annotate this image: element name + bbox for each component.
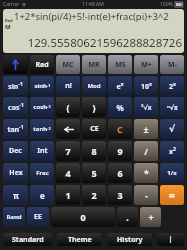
- staticText: √: [169, 124, 176, 134]
- staticText: 2x: [169, 81, 176, 91]
- button[interactable]: Rand: [3, 207, 25, 227]
- button[interactable]: M-: [160, 55, 184, 74]
- button[interactable]: C: [108, 119, 132, 139]
- button[interactable]: 0: [51, 207, 115, 227]
- staticText: .: [126, 211, 129, 223]
- staticText: ex: [116, 81, 124, 91]
- button[interactable]: tan-1: [3, 119, 28, 139]
- button[interactable]: sin-1: [3, 76, 28, 95]
- button[interactable]: n!: [56, 76, 80, 95]
- staticText: e: [40, 190, 45, 201]
- button[interactable]: Int: [30, 141, 54, 161]
- button[interactable]: 1/x: [160, 163, 184, 183]
- button[interactable]: Standard: [3, 233, 52, 246]
- button[interactable]: sinh-1: [30, 76, 54, 95]
- button[interactable]: 3: [108, 185, 132, 205]
- button[interactable]: 7: [56, 141, 80, 161]
- staticText: ⁿ√x: [167, 103, 178, 112]
- staticText: M-: [168, 60, 177, 70]
- button[interactable]: Equals: [160, 185, 184, 205]
- button[interactable]: 10x: [134, 76, 158, 95]
- staticText: cos-1: [8, 102, 24, 112]
- button[interactable]: EE: [27, 207, 49, 227]
- staticText: 7: [65, 145, 71, 157]
- button[interactable]: 6: [108, 163, 132, 183]
- staticText: sinh-1: [34, 82, 51, 90]
- button[interactable]: 2: [82, 185, 106, 205]
- button[interactable]: Square root: [160, 119, 184, 139]
- button[interactable]: 2x: [160, 76, 184, 95]
- staticText: 3: [117, 189, 123, 201]
- button[interactable]: M+: [134, 55, 158, 74]
- staticText: Frac: [36, 169, 49, 177]
- button[interactable]: /: [134, 141, 158, 161]
- staticText: =: [169, 188, 175, 202]
- button[interactable]: (: [56, 97, 80, 117]
- staticText: 5: [91, 167, 97, 179]
- staticText: 100%: [160, 1, 173, 8]
- button[interactable]: 9: [108, 141, 132, 161]
- staticText: M+: [141, 60, 152, 70]
- button[interactable]: Frac: [30, 163, 54, 183]
- button[interactable]: Rad: [30, 55, 54, 74]
- button[interactable]: Theme: [57, 233, 102, 246]
- staticText: 4: [65, 167, 71, 179]
- staticText: x2: [169, 146, 176, 156]
- staticText: M: [5, 23, 11, 31]
- button[interactable]: -: [134, 185, 158, 205]
- staticText: Mod: [87, 82, 101, 90]
- staticText: 1: [65, 189, 71, 201]
- staticText: Hex: [9, 168, 23, 178]
- staticText: EE: [34, 212, 42, 222]
- button[interactable]: ex: [108, 76, 132, 95]
- button[interactable]: Hex: [3, 163, 28, 183]
- button[interactable]: tanh-1: [30, 119, 54, 139]
- button[interactable]: +: [140, 207, 161, 227]
- button[interactable]: Dec: [3, 141, 28, 161]
- staticText: (: [66, 101, 70, 113]
- button[interactable]: ±: [134, 119, 158, 139]
- button[interactable]: cos-1: [3, 97, 28, 117]
- staticText: Carrier: [3, 1, 20, 8]
- staticText: ±: [143, 123, 149, 135]
- staticText: tan-1: [7, 124, 24, 134]
- button[interactable]: 4: [56, 163, 80, 183]
- staticText: Int: [37, 146, 48, 156]
- staticText: ): [92, 101, 96, 113]
- button[interactable]: MC: [56, 55, 80, 74]
- button[interactable]: MS: [108, 55, 132, 74]
- staticText: MR: [88, 60, 100, 70]
- button[interactable]: 1: [56, 185, 80, 205]
- staticText: Theme: [68, 235, 92, 245]
- staticText: Rad: [5, 18, 13, 23]
- staticText: Standard: [12, 235, 44, 245]
- staticText: 8: [91, 145, 97, 157]
- staticText: 1+2*sin(pi/4)+5!-int(e)+frac(pi)+3^2: [14, 10, 169, 23]
- button[interactable]: More: [157, 233, 184, 246]
- button[interactable]: π: [3, 185, 28, 205]
- staticText: History: [117, 235, 143, 245]
- button[interactable]: MR: [82, 55, 106, 74]
- staticText: -: [145, 189, 148, 201]
- button[interactable]: .: [117, 207, 138, 227]
- staticText: Rad: [35, 60, 49, 70]
- button[interactable]: e: [30, 185, 54, 205]
- button[interactable]: Mod: [82, 76, 106, 95]
- button[interactable]: *: [134, 163, 158, 183]
- staticText: %: [116, 102, 124, 113]
- button[interactable]: 8: [82, 141, 106, 161]
- button[interactable]: %: [108, 97, 132, 117]
- button[interactable]: x2: [160, 141, 184, 161]
- button[interactable]: CE: [82, 119, 106, 139]
- button[interactable]: Shift: [3, 55, 28, 74]
- button[interactable]: 5: [82, 163, 106, 183]
- button[interactable]: ): [82, 97, 106, 117]
- staticText: C: [117, 123, 123, 135]
- button[interactable]: cosh-1: [30, 97, 54, 117]
- button[interactable]: Backspace: [56, 119, 80, 139]
- button[interactable]: History: [107, 233, 152, 246]
- button[interactable]: Root ⁿ: [160, 97, 184, 117]
- staticText: MS: [115, 60, 126, 70]
- staticText: sin-1: [8, 81, 23, 91]
- button[interactable]: Root ³: [134, 97, 158, 117]
